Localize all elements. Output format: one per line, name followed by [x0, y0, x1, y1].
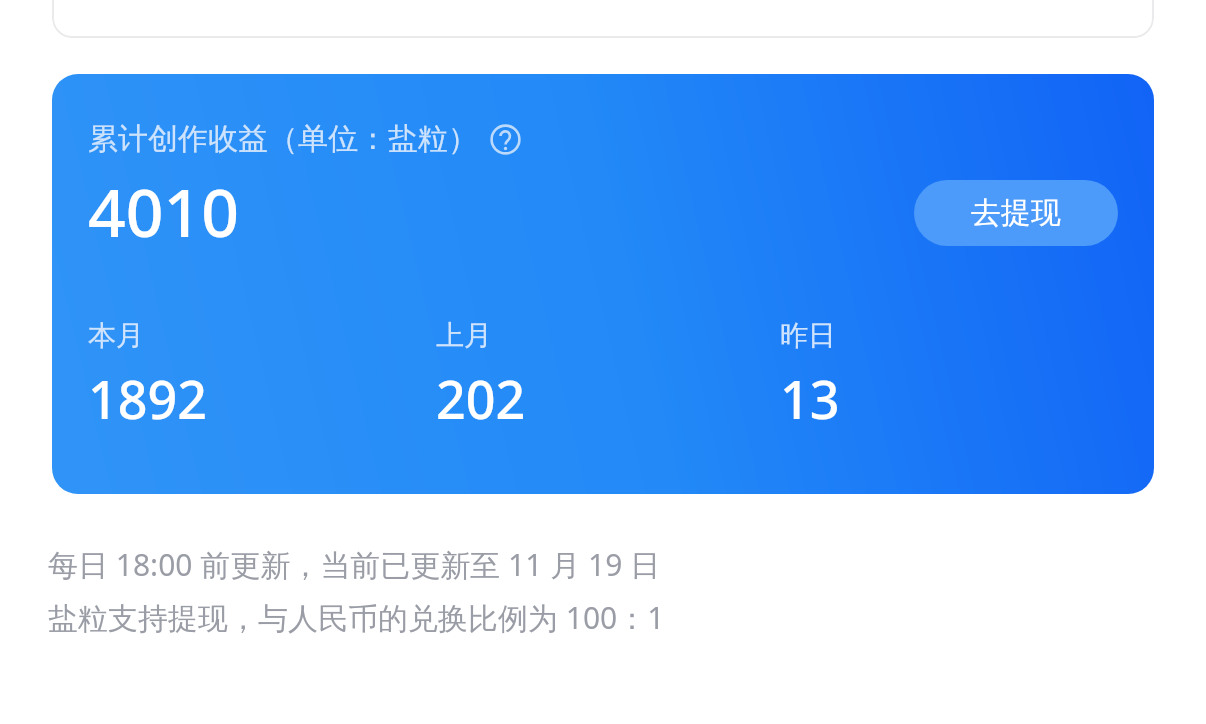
staticText: 盐粒支持提现，与人民币的兑换比例为 100：1	[48, 597, 665, 638]
staticText: 昨日	[780, 318, 836, 353]
staticText: 1892	[88, 363, 207, 434]
staticText: 累计创作收益（单位：盐粒）	[88, 120, 478, 158]
staticText: 每日 18:00 前更新，当前已更新至 11 月 19 日	[48, 544, 661, 585]
button[interactable]	[52, 0, 1154, 38]
staticText: 202	[436, 363, 526, 434]
staticText: 13	[780, 363, 840, 434]
button[interactable]: 帮助说明	[490, 124, 521, 155]
staticText: 本月	[88, 318, 144, 353]
staticText: 4010	[88, 166, 240, 256]
staticText: 去提现	[971, 194, 1061, 232]
button[interactable]: 去提现	[914, 180, 1118, 246]
staticText: 上月	[436, 318, 492, 353]
